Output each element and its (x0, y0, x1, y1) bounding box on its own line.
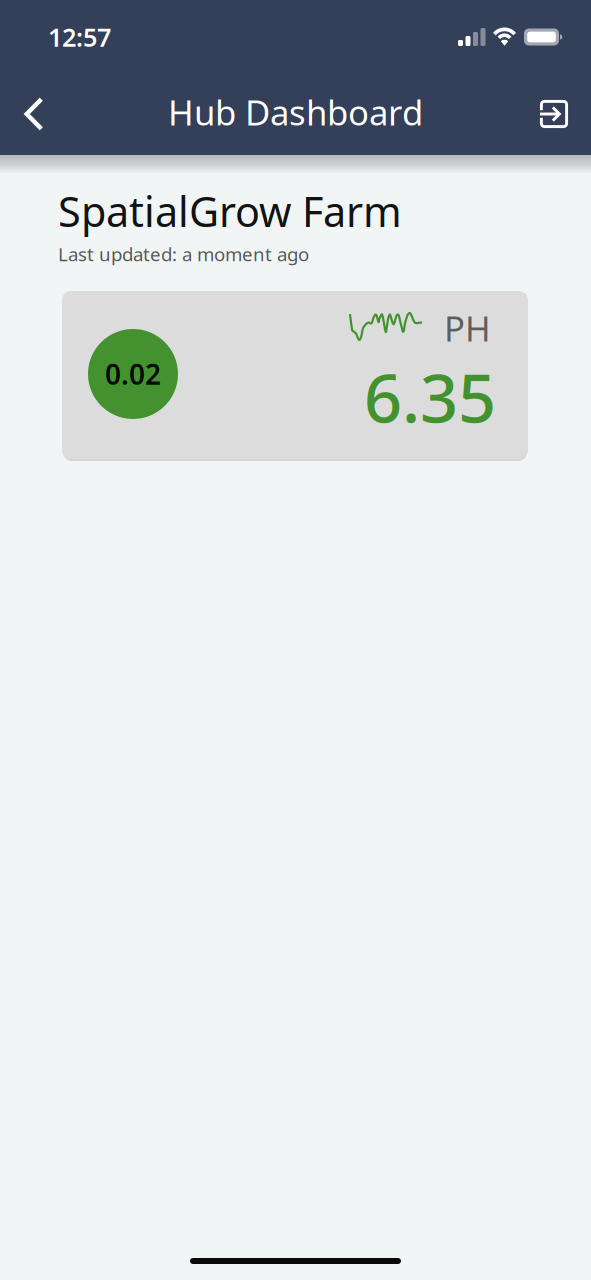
staticText: Hub Dashboard (168, 89, 423, 135)
button[interactable]: Back (1, 79, 67, 149)
staticText: 6.35 (364, 353, 496, 441)
staticText: 0.02 (105, 355, 161, 393)
button[interactable]: Sign out (516, 79, 591, 149)
staticText: Last updated: a moment ago (58, 242, 309, 266)
button[interactable]: 0.02 (62, 291, 528, 459)
staticText: SpatialGrow Farm (58, 184, 402, 238)
staticText: PH (444, 305, 491, 351)
staticText: 12:57 (48, 20, 111, 54)
